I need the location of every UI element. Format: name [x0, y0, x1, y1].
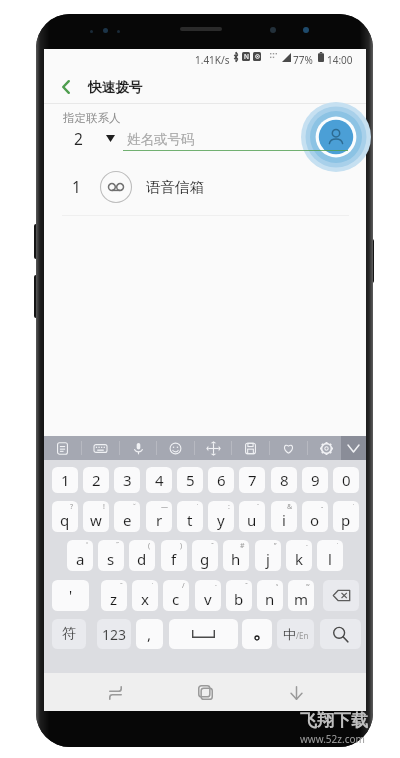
staticText: z — [110, 589, 118, 609]
button[interactable]: Keyboard — [82, 436, 118, 460]
button[interactable]: , — [136, 619, 163, 649]
staticText: ' — [69, 586, 73, 605]
button[interactable]: 4 — [146, 467, 172, 493]
button[interactable]: v — [195, 580, 221, 611]
button[interactable]: y — [208, 501, 234, 532]
button[interactable]: Select contact — [301, 102, 371, 172]
staticText: ˇ — [211, 541, 214, 551]
staticText: - — [321, 502, 324, 512]
staticText: 4 — [155, 470, 164, 490]
button[interactable]: o — [302, 501, 328, 532]
button[interactable]: Settings — [308, 436, 344, 460]
button[interactable]: Recent apps — [93, 674, 137, 711]
staticText: e — [123, 510, 132, 530]
button[interactable]: Backspace — [323, 580, 359, 611]
button[interactable]: Space — [169, 619, 238, 649]
button[interactable]: c — [163, 580, 189, 611]
button[interactable]: p — [333, 501, 359, 532]
button[interactable]: g — [192, 540, 218, 571]
button[interactable]: Home — [183, 674, 227, 711]
staticText: d — [137, 549, 147, 569]
button[interactable]: Search — [320, 619, 361, 649]
button[interactable]: 6 — [208, 467, 234, 493]
staticText: f — [171, 549, 177, 569]
button[interactable] — [242, 619, 272, 649]
button[interactable]: Hide keyboard — [341, 436, 366, 460]
button[interactable]: 2 — [83, 467, 109, 493]
button[interactable]: 3 — [114, 467, 140, 493]
button[interactable]: 8 — [271, 467, 297, 493]
staticText: 语音信箱 — [146, 178, 204, 196]
button[interactable]: f — [161, 540, 187, 571]
button[interactable]: m — [288, 580, 314, 611]
button[interactable]: 9 — [302, 467, 328, 493]
button[interactable]: j — [255, 540, 281, 571]
staticText: w — [90, 510, 102, 530]
button[interactable]: h — [223, 540, 249, 571]
staticText: ˙ — [197, 502, 199, 512]
button[interactable]: Back — [53, 74, 79, 100]
staticText: ) — [180, 541, 183, 551]
button[interactable]: t — [177, 501, 203, 532]
staticText: ˇ — [245, 581, 248, 591]
button[interactable]: d — [129, 540, 155, 571]
staticText: ! — [103, 502, 105, 512]
staticText: 飞翔下载 — [300, 710, 368, 731]
button[interactable]: Clipboard — [232, 436, 268, 460]
staticText: · — [306, 541, 308, 551]
button[interactable]: r — [146, 501, 172, 532]
staticText: ˝ — [116, 541, 120, 551]
staticText: ˢ — [276, 581, 279, 591]
staticText: 1 — [72, 176, 81, 197]
button[interactable]: w — [83, 501, 109, 532]
staticText: 0 — [342, 470, 351, 490]
staticText: / — [182, 581, 185, 591]
button[interactable]: q — [52, 501, 78, 532]
staticText: p — [341, 510, 351, 530]
staticText: 14:00 — [327, 53, 353, 67]
staticText: ˘ — [133, 502, 136, 512]
button[interactable]: Speed dial slot 2 — [64, 124, 120, 152]
staticText: # — [240, 541, 245, 551]
button[interactable]: Numbers — [97, 619, 131, 649]
staticText: ? — [70, 502, 74, 512]
staticText: 指定联系人 — [63, 111, 121, 125]
button[interactable]: n — [257, 580, 283, 611]
button[interactable]: Symbols — [52, 619, 86, 649]
button[interactable]: 1 — [52, 467, 78, 493]
button[interactable]: Switch language — [277, 619, 314, 649]
button[interactable]: Emoji — [157, 436, 193, 460]
staticText: i — [282, 510, 286, 530]
staticText: 1 — [61, 470, 70, 490]
button[interactable]: a — [67, 540, 93, 571]
button[interactable]: Voice input — [120, 436, 156, 460]
button[interactable]: x — [132, 580, 158, 611]
button[interactable]: 7 — [239, 467, 265, 493]
staticText: 中 — [283, 626, 296, 642]
button[interactable]: Name or number — [123, 125, 348, 155]
staticText: v — [204, 589, 212, 609]
button[interactable]: Favorites — [270, 436, 306, 460]
button[interactable]: Hide keyboard — [274, 674, 318, 711]
staticText: ˙ — [353, 502, 355, 512]
staticText: b — [234, 589, 244, 609]
button[interactable]: 1 — [44, 168, 366, 206]
button[interactable]: z — [101, 580, 127, 611]
button[interactable]: k — [286, 540, 312, 571]
button[interactable]: i — [271, 501, 297, 532]
button[interactable]: l — [317, 540, 343, 571]
button[interactable]: 0 — [333, 467, 359, 493]
button[interactable]: e — [114, 501, 140, 532]
staticText: 3 — [123, 470, 132, 490]
button[interactable]: u — [239, 501, 265, 532]
button[interactable]: b — [226, 580, 252, 611]
button[interactable]: 5 — [177, 467, 203, 493]
staticText: ʷ — [306, 581, 310, 591]
button[interactable]: Stickers — [44, 436, 80, 460]
button[interactable]: s — [98, 540, 124, 571]
staticText: 9 — [311, 470, 320, 490]
staticText: ˙ — [152, 581, 154, 591]
button[interactable]: ' — [52, 580, 89, 611]
button[interactable]: Move — [195, 436, 231, 460]
staticText: 7 — [248, 470, 257, 490]
